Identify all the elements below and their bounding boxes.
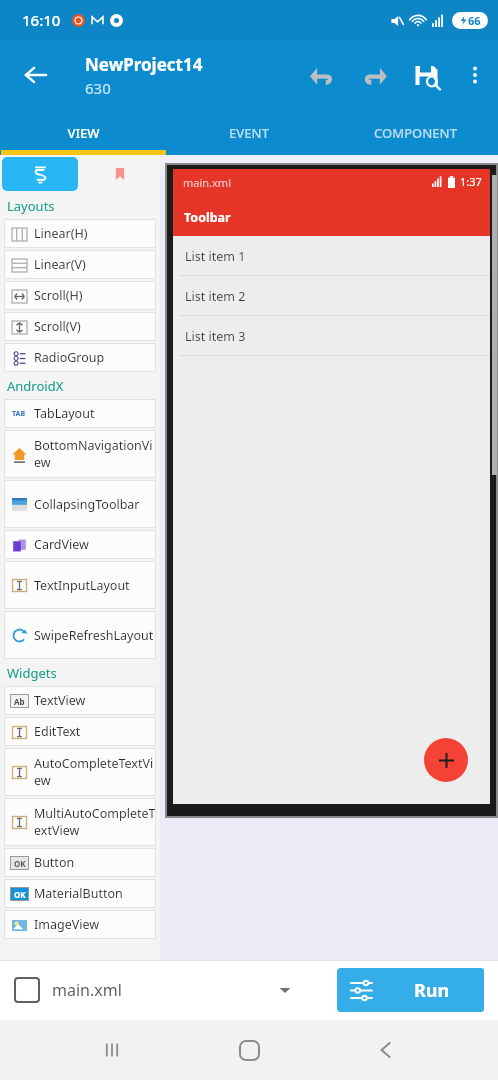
button[interactable]: VIEW	[0, 110, 166, 155]
staticText: main.xml	[52, 979, 122, 1001]
staticText: List item 2	[185, 288, 246, 305]
button[interactable]: EVENT	[166, 110, 332, 155]
staticText: TabLayout	[34, 405, 95, 422]
staticText: Scroll(V)	[34, 318, 81, 335]
button[interactable]: Save	[400, 49, 452, 101]
staticText: 1:37	[460, 174, 482, 189]
button[interactable]: Device	[14, 977, 40, 1003]
staticText: Linear(H)	[34, 225, 88, 242]
staticText: SwipeRefreshLayout	[34, 627, 154, 644]
button[interactable]: Scroll(V)	[9, 312, 156, 341]
staticText: BottomNavigationView	[34, 437, 156, 471]
button[interactable]: Back	[361, 1025, 411, 1075]
button[interactable]: MultiAutoCompleteTextView	[9, 798, 156, 846]
staticText: 630	[85, 78, 111, 98]
staticText: Toolbar	[184, 209, 231, 226]
button[interactable]: List item 3	[173, 316, 490, 356]
staticText: COMPONENT	[374, 124, 457, 142]
staticText: OK	[14, 889, 26, 900]
button[interactable]: EditText	[9, 717, 156, 746]
button[interactable]: Scroll(H)	[9, 281, 156, 310]
staticText: AutoCompleteTextView	[34, 755, 156, 789]
staticText: Widgets	[7, 664, 57, 682]
button[interactable]: Add	[424, 738, 468, 782]
staticText: AndroidX	[7, 377, 64, 395]
staticText: List item 1	[185, 248, 246, 265]
button[interactable]: Back	[10, 49, 62, 101]
button[interactable]: Ab	[9, 686, 156, 715]
staticText: EditText	[34, 723, 81, 740]
staticText: Scroll(H)	[34, 287, 83, 304]
button[interactable]: Recents	[87, 1025, 137, 1075]
button[interactable]: COMPONENT	[332, 110, 498, 155]
staticText: RadioGroup	[34, 349, 105, 366]
button[interactable]: BottomNavigationView	[9, 430, 156, 478]
button[interactable]: SwipeRefreshLayout	[9, 611, 156, 659]
button[interactable]: ImageView	[9, 910, 156, 939]
staticText: CardView	[34, 536, 89, 553]
staticText: 66	[468, 13, 481, 28]
button[interactable]: More options	[452, 52, 498, 98]
button[interactable]: Select file	[270, 975, 300, 1005]
button[interactable]: Settings	[337, 968, 386, 1012]
staticText: OK	[14, 858, 26, 869]
staticText: TextInputLayout	[34, 577, 130, 594]
staticText: MaterialButton	[34, 885, 123, 902]
button[interactable]: Favorites	[80, 155, 160, 193]
button[interactable]: RadioGroup	[9, 343, 156, 372]
staticText: Ab	[14, 696, 25, 707]
button[interactable]: TAB	[9, 399, 156, 428]
button[interactable]: TextInputLayout	[9, 561, 156, 609]
button[interactable]: Linear(V)	[9, 250, 156, 279]
staticText: TAB	[12, 409, 26, 419]
staticText: Linear(V)	[34, 256, 86, 273]
staticText: main.xml	[183, 175, 231, 190]
button[interactable]: List item 2	[173, 276, 490, 316]
button[interactable]: AutoCompleteTextView	[9, 748, 156, 796]
staticText: CollapsingToolbar	[34, 496, 140, 513]
button[interactable]: OK	[9, 879, 156, 908]
button[interactable]: Undo	[296, 49, 348, 101]
staticText: ImageView	[34, 916, 100, 933]
staticText: TextView	[34, 692, 86, 709]
button[interactable]: List item 1	[173, 236, 490, 276]
button[interactable]: CardView	[9, 530, 156, 559]
staticText: EVENT	[229, 124, 269, 142]
button[interactable]: Linear(H)	[9, 219, 156, 248]
button[interactable]: OK	[9, 848, 156, 877]
staticText: Run	[414, 978, 450, 1003]
staticText: MultiAutoCompleteTextView	[34, 805, 156, 839]
staticText: List item 3	[185, 328, 246, 345]
staticText: Layouts	[7, 197, 55, 215]
button[interactable]: Palette	[2, 157, 78, 191]
staticText: NewProject14	[85, 53, 203, 76]
staticText: Button	[34, 854, 75, 871]
staticText: VIEW	[67, 124, 100, 142]
button[interactable]: Run	[379, 968, 484, 1012]
button[interactable]: CollapsingToolbar	[9, 480, 156, 528]
button[interactable]: Redo	[348, 49, 400, 101]
staticText: 16:10	[22, 10, 61, 30]
button[interactable]: Home	[224, 1025, 274, 1075]
